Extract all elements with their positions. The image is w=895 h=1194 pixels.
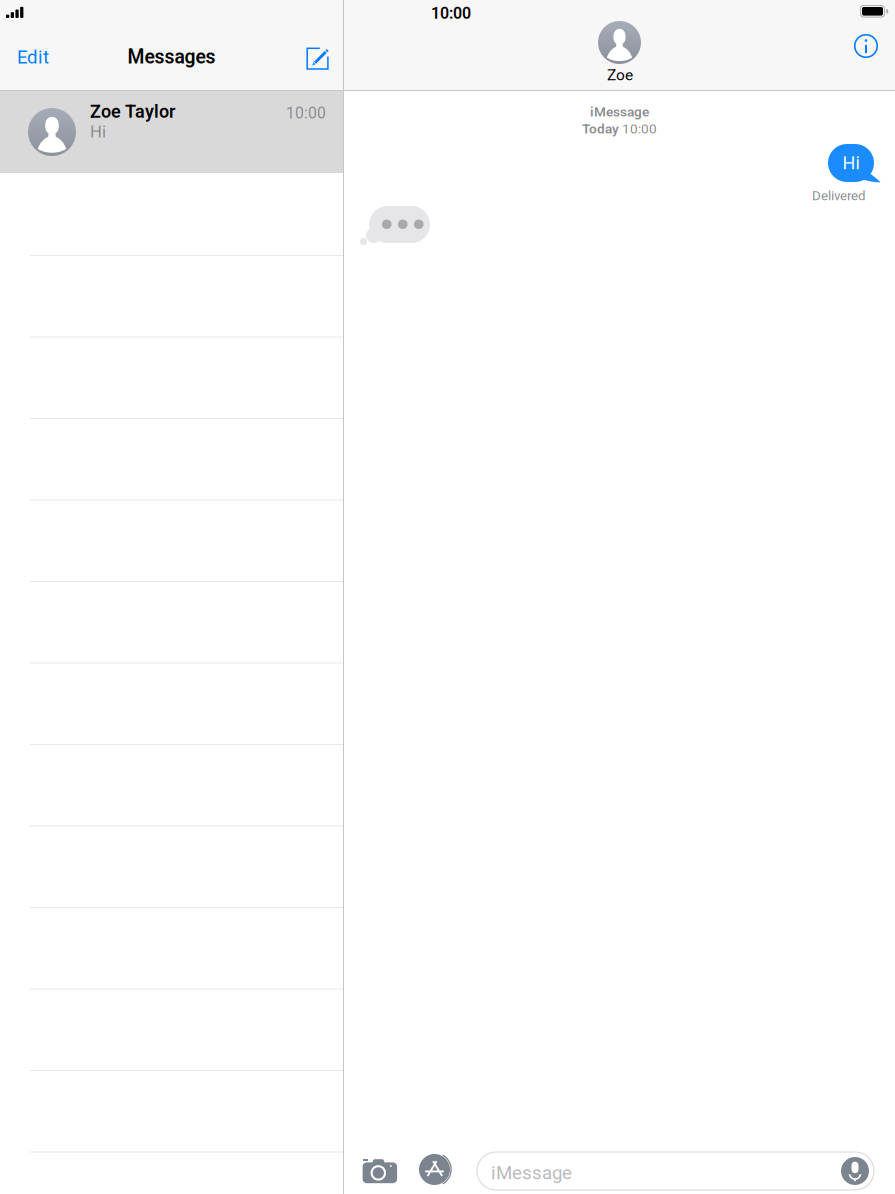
staticText: iMessage <box>590 104 649 120</box>
staticText: Edit <box>17 46 49 68</box>
button[interactable]: Dictate <box>841 1157 869 1185</box>
button[interactable]: Camera <box>362 1157 398 1184</box>
staticText: Zoe <box>607 66 633 84</box>
staticText: 10:00 <box>286 104 326 122</box>
staticText: Today <box>582 121 619 137</box>
staticText: 10:00 <box>622 121 657 137</box>
button[interactable]: New Message <box>306 47 331 72</box>
staticText: iMessage <box>491 1162 572 1184</box>
staticText: 10:00 <box>431 4 471 23</box>
button[interactable]: Details <box>854 34 878 58</box>
button[interactable]: Zoe Taylor <box>0 91 343 173</box>
button[interactable]: Edit <box>17 46 49 68</box>
staticText: Delivered <box>812 188 866 204</box>
staticText: Hi <box>90 122 106 141</box>
staticText: Messages <box>127 46 215 68</box>
staticText: Zoe Taylor <box>90 101 175 122</box>
staticText: Hi <box>842 152 859 174</box>
button[interactable]: Apps <box>419 1154 453 1187</box>
